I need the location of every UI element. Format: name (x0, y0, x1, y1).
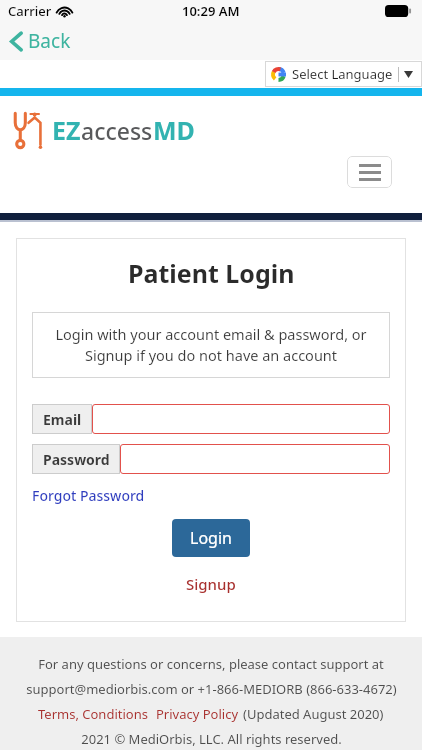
staticText: Patient Login (128, 256, 295, 290)
button[interactable]: Login (172, 519, 250, 557)
staticText: Select Language (292, 65, 393, 83)
staticText: Carrier (8, 2, 52, 20)
staticText: Back (28, 28, 71, 54)
staticText: 2021 © MediOrbis, LLC. All rights reserv… (81, 730, 342, 748)
button[interactable]: Password (32, 444, 390, 474)
staticText: EZ (52, 113, 81, 147)
staticText: Password (43, 450, 110, 469)
staticText: access (81, 115, 153, 146)
staticText: Login with your account email & password… (42, 324, 380, 366)
staticText: support@mediorbis.com or +1-866-MEDIORB … (26, 680, 397, 698)
staticText: 10:29 AM (182, 2, 240, 20)
button[interactable]: Privacy Policy (156, 705, 239, 723)
staticText: MD (153, 113, 195, 147)
button[interactable]: Signup (186, 574, 236, 594)
staticText: Login (190, 527, 232, 549)
button[interactable]: Terms, Conditions (38, 705, 148, 723)
button[interactable]: Menu (347, 156, 392, 188)
button[interactable]: EZ (8, 106, 199, 154)
button[interactable]: Email (32, 404, 390, 434)
staticText: For any questions or concerns, please co… (38, 655, 384, 673)
button[interactable]: Back (0, 24, 83, 58)
button[interactable]: Select Language (265, 61, 422, 87)
staticText: (Updated August 2020) (243, 705, 384, 723)
staticText: Email (43, 410, 82, 429)
button[interactable]: Forgot Password (32, 486, 145, 505)
